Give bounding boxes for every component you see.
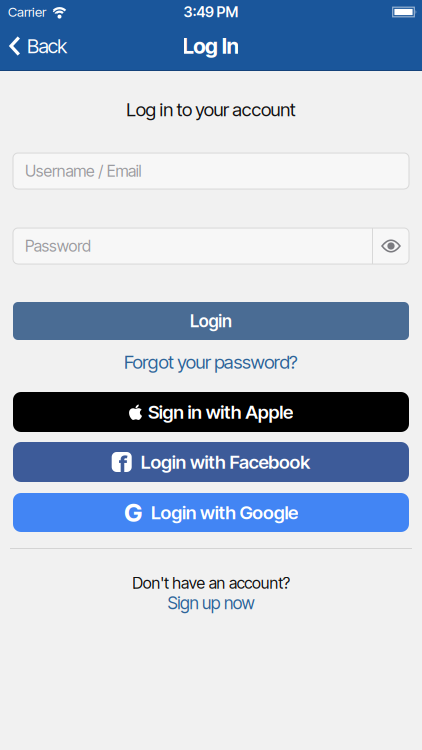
staticText: Login with Google xyxy=(151,501,298,523)
button[interactable]: Login xyxy=(13,302,409,340)
staticText: Sign up now xyxy=(167,593,254,613)
staticText: 3:49 PM xyxy=(184,3,238,21)
staticText: G xyxy=(124,498,142,527)
button[interactable]: Sign in with Apple xyxy=(13,392,409,432)
staticText: Carrier xyxy=(8,4,46,20)
button[interactable]: Show password xyxy=(373,228,409,264)
staticText: Login with Facebook xyxy=(141,451,310,473)
staticText: f xyxy=(119,450,128,479)
button[interactable]: f xyxy=(13,442,409,482)
staticText: Log in to your account xyxy=(126,98,296,120)
staticText: Sign in with Apple xyxy=(148,401,293,423)
button[interactable]: Forgot your password? xyxy=(118,348,304,376)
staticText: Don't have an account? xyxy=(132,574,290,592)
button[interactable]: Sign up now xyxy=(163,591,258,615)
staticText: Password xyxy=(25,237,91,255)
staticText: Forgot your password? xyxy=(124,351,298,373)
staticText: Login xyxy=(190,311,232,331)
staticText: Username / Email xyxy=(25,162,141,180)
button[interactable]: Back xyxy=(0,26,67,66)
staticText: Back xyxy=(27,34,67,58)
staticText: Log In xyxy=(182,33,239,59)
button[interactable]: G xyxy=(13,493,409,532)
